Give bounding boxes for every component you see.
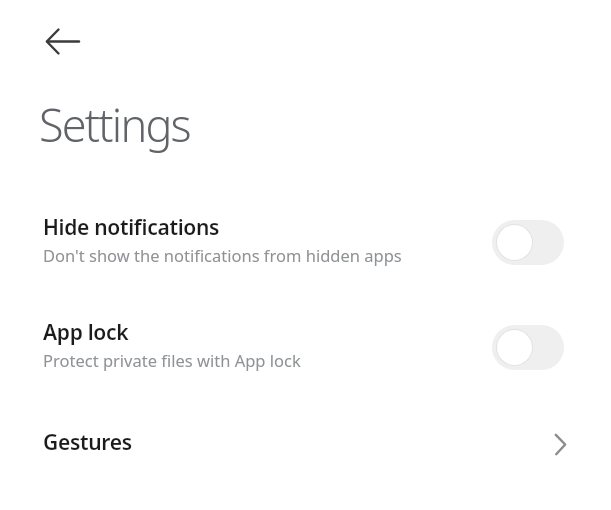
button[interactable] — [0, 306, 611, 391]
button[interactable] — [492, 325, 564, 370]
button[interactable] — [0, 200, 611, 285]
button[interactable] — [30, 12, 94, 70]
staticText: Hide notifications — [43, 213, 220, 242]
staticText: App lock — [43, 318, 129, 347]
staticText: Don't show the notifications from hidden… — [43, 244, 402, 266]
staticText: Gestures — [43, 428, 132, 457]
staticText: Settings — [39, 94, 190, 155]
staticText: Protect private files with App lock — [43, 349, 301, 371]
button[interactable] — [0, 420, 611, 470]
button[interactable] — [492, 220, 564, 265]
